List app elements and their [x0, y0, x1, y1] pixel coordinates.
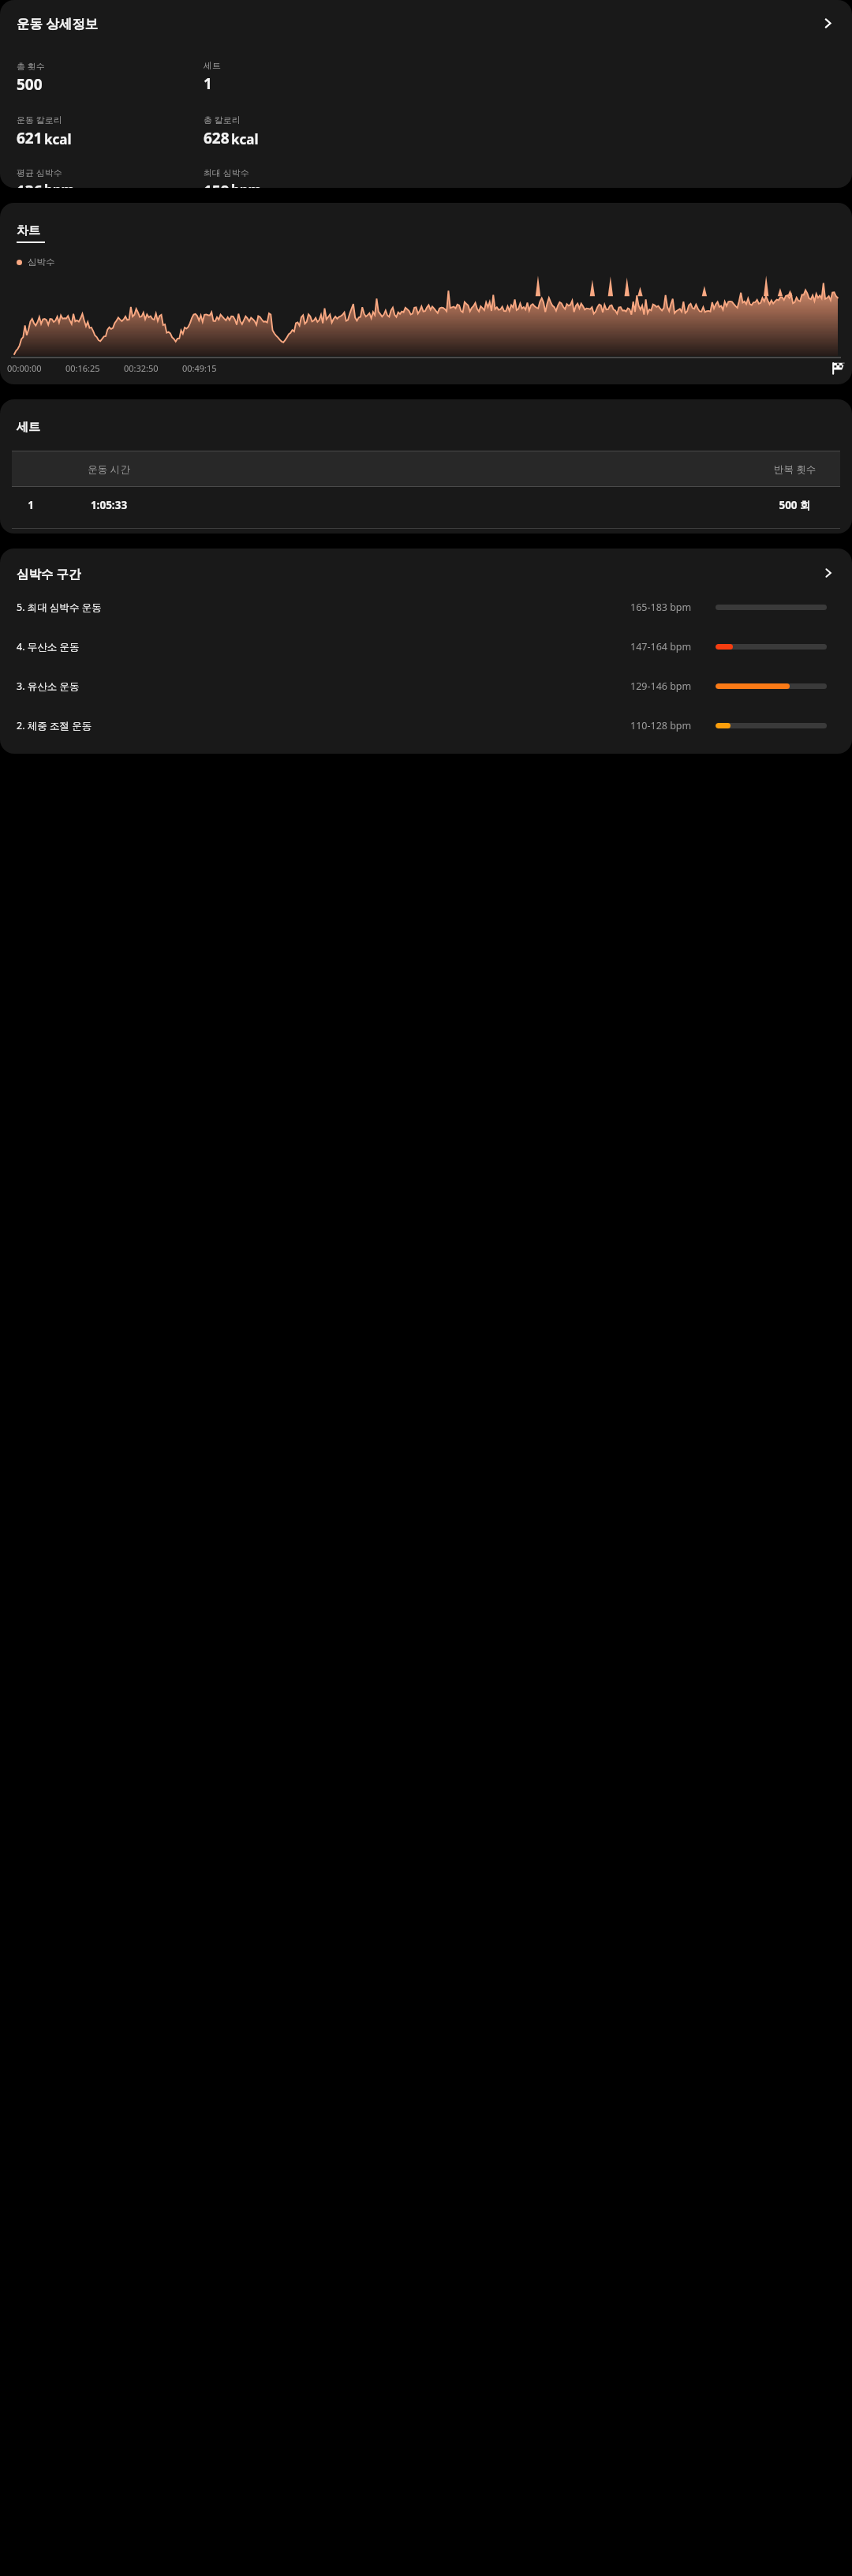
button[interactable]: 차트 [17, 223, 45, 243]
staticText: 00:49:15 [182, 362, 217, 374]
staticText: 3. 유산소 운동 [17, 680, 80, 693]
staticText: 00:00:00 [7, 362, 42, 374]
staticText: bpm [44, 181, 75, 188]
button[interactable]: 심박수 구간 [0, 549, 852, 597]
staticText: 00:32:50 [124, 362, 159, 374]
staticText: 운동 시간 [50, 462, 168, 476]
button[interactable]: 2. 체중 조절 운동 [0, 716, 852, 736]
other: Finish [830, 361, 845, 376]
staticText: 159 [204, 181, 230, 188]
staticText: 00:16:25 [65, 362, 100, 374]
staticText: 세트 [204, 60, 221, 71]
button[interactable]: 4. 무산소 운동 [0, 637, 852, 657]
staticText: 1:05:33 [50, 498, 168, 512]
staticText: 4. 무산소 운동 [17, 640, 80, 653]
staticText: kcal [231, 130, 259, 148]
button[interactable]: 운동 상세정보 [0, 0, 852, 46]
staticText: 최대 심박수 [204, 167, 249, 178]
staticText: 세트 [17, 420, 40, 435]
staticText: 1 [12, 498, 50, 512]
staticText: 총 횟수 [17, 60, 45, 72]
staticText: 147-164 bpm [630, 640, 716, 653]
staticText: 1 [204, 73, 212, 94]
staticText: kcal [44, 130, 72, 148]
staticText: 심박수 구간 [17, 565, 81, 582]
button[interactable]: 5. 최대 심박수 운동 [0, 597, 852, 617]
staticText: 2. 체중 조절 운동 [17, 719, 92, 732]
staticText: 5. 최대 심박수 운동 [17, 601, 102, 614]
staticText: 운동 칼로리 [17, 114, 62, 125]
staticText: 심박수 [28, 256, 55, 268]
other: 자세히 보기 [822, 567, 835, 579]
staticText: 621 [17, 128, 43, 148]
staticText: 평균 심박수 [17, 167, 62, 178]
staticText: bpm [231, 181, 262, 188]
staticText: 110-128 bpm [630, 719, 716, 732]
staticText: 136 [17, 181, 43, 188]
staticText: 운동 상세정보 [17, 14, 99, 32]
button[interactable]: 3. 유산소 운동 [0, 676, 852, 696]
staticText: 총 칼로리 [204, 114, 241, 125]
staticText: 129-146 bpm [630, 680, 716, 693]
staticText: 628 [204, 128, 230, 148]
staticText: 500 회 [749, 498, 840, 512]
other: 자세히 보기 [821, 17, 835, 30]
staticText: 차트 [17, 223, 40, 238]
staticText: 반복 횟수 [749, 462, 840, 476]
staticText: 500 [17, 74, 43, 95]
staticText: 165-183 bpm [630, 601, 716, 614]
